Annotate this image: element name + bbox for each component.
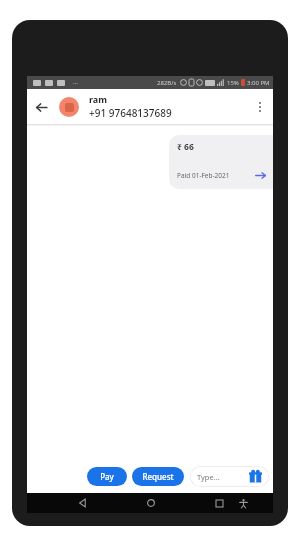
button[interactable]: Accessibility <box>234 494 252 512</box>
staticText: 282B/s <box>157 79 177 87</box>
button[interactable]: Contact avatar <box>59 97 79 117</box>
button[interactable]: Recent apps <box>210 494 228 512</box>
button[interactable]: ₹ 66 <box>169 135 273 189</box>
button[interactable]: Type... <box>190 466 269 487</box>
staticText: 3:00 PM <box>247 79 270 87</box>
staticText: Type... <box>197 472 220 482</box>
button[interactable]: Back <box>74 494 92 512</box>
staticText: Paid 01-Feb-2021 <box>177 171 230 180</box>
staticText: +91 97648137689 <box>89 106 172 120</box>
button[interactable]: Home <box>142 494 160 512</box>
staticText: ··· <box>73 79 78 87</box>
staticText: Request <box>142 471 174 482</box>
button[interactable]: Request <box>132 467 184 486</box>
button[interactable]: Send gift <box>249 470 262 483</box>
staticText: ₹ 66 <box>177 141 194 153</box>
staticText: 15% <box>227 79 239 87</box>
staticText: ram <box>89 93 108 105</box>
button[interactable]: Back <box>27 93 55 121</box>
button[interactable]: Pay <box>87 467 127 486</box>
button[interactable]: More options <box>249 96 271 118</box>
staticText: Pay <box>100 471 114 482</box>
